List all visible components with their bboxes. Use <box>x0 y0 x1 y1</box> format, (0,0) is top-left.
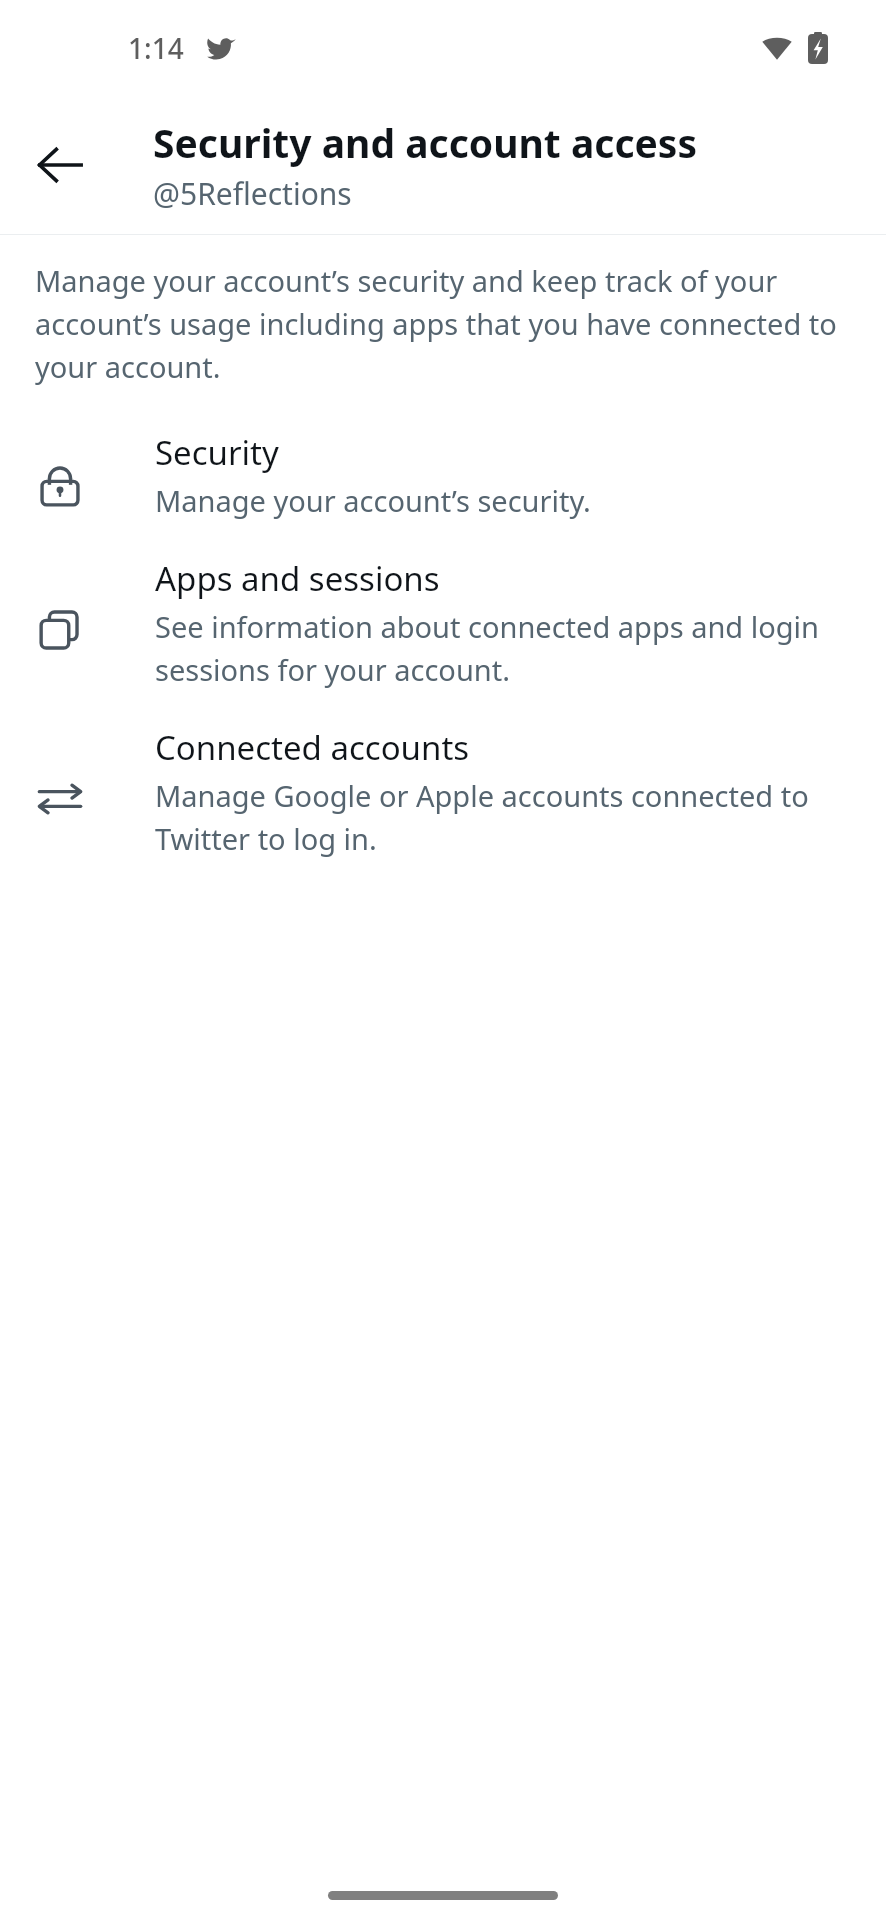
button[interactable]: Apps and sessions <box>0 556 886 689</box>
button[interactable]: Back <box>14 119 106 211</box>
staticText: Apps and sessions <box>155 556 440 601</box>
staticText: Security <box>155 430 279 475</box>
staticText: Connected accounts <box>155 725 470 770</box>
staticText: Manage your account’s security and keep … <box>35 261 858 386</box>
staticText: @5Reflections <box>153 173 352 214</box>
button[interactable]: Connected accounts <box>0 725 886 858</box>
staticText: 1:14 <box>128 29 184 67</box>
staticText: Manage Google or Apple accounts connecte… <box>155 776 860 858</box>
staticText: Manage your account’s security. <box>155 481 591 520</box>
button[interactable]: Security <box>0 430 886 520</box>
staticText: Security and account access <box>153 116 697 169</box>
staticText: See information about connected apps and… <box>155 607 860 689</box>
